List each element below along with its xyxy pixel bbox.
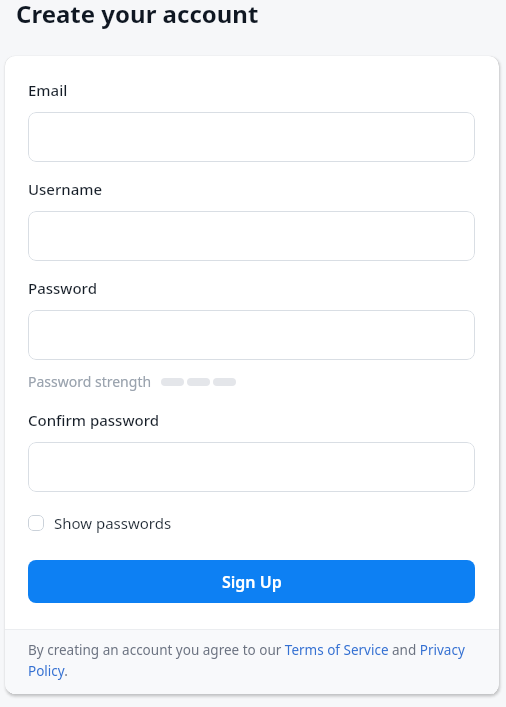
staticText: Sign Up [222, 571, 282, 593]
button[interactable] [28, 442, 475, 492]
button[interactable]: By creating an account you agree to our … [5, 629, 499, 694]
staticText: Password strength [28, 372, 152, 391]
staticText: By creating an account you agree to our … [28, 641, 465, 680]
staticText: Confirm password [28, 410, 160, 430]
button[interactable] [28, 112, 475, 162]
button[interactable] [28, 310, 475, 360]
staticText: Email [28, 80, 68, 100]
staticText: Create your account [16, 0, 259, 30]
staticText: Password [28, 278, 97, 298]
button[interactable]: Show passwords [28, 513, 172, 533]
button[interactable] [28, 211, 475, 261]
staticText: Username [28, 179, 103, 199]
button[interactable]: Sign Up [28, 560, 475, 603]
staticText: Show passwords [54, 513, 172, 533]
